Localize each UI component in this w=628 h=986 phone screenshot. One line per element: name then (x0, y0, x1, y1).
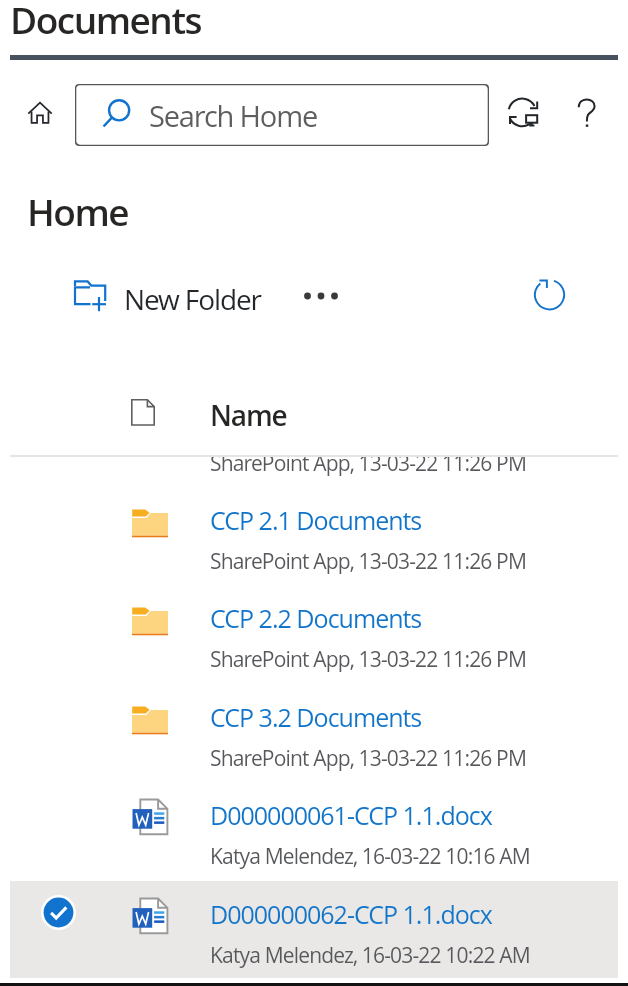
button[interactable]: D000000062-CCP 1.1.docx (10, 881, 618, 978)
staticText: SharePoint App, 13-03-22 11:26 PM (210, 744, 527, 773)
staticText: SharePoint App, 13-03-22 11:26 PM (210, 547, 527, 576)
staticText: CCP 2.1 Documents (210, 503, 422, 537)
staticText: Katya Melendez, 16-03-22 10:22 AM (210, 941, 530, 970)
button[interactable]: Help (566, 88, 612, 134)
staticText: CCP 3.2 Documents (210, 700, 422, 734)
staticText: Documents (10, 0, 201, 44)
button[interactable]: CCP 2.2 Documents (0, 585, 628, 682)
button[interactable]: CCP 2.1 Documents (0, 487, 628, 584)
staticText: Search Home (149, 96, 318, 135)
button[interactable]: More options (295, 272, 347, 320)
staticText: D000000062-CCP 1.1.docx (210, 897, 492, 931)
button[interactable]: New Folder (66, 268, 272, 318)
button[interactable]: D000000061-CCP 1.1.docx (0, 782, 628, 879)
staticText: Katya Melendez, 16-03-22 10:16 AM (210, 842, 530, 871)
button[interactable]: Sync (498, 88, 550, 140)
button[interactable]: Home (14, 87, 66, 139)
staticText: SharePoint App, 13-03-22 11:26 PM (210, 645, 527, 674)
staticText: CCP 2.2 Documents (210, 601, 422, 635)
button[interactable]: CCP 3.2 Documents (0, 684, 628, 781)
button[interactable]: Refresh (523, 268, 575, 320)
staticText: New Folder (124, 280, 261, 318)
staticText: Name (210, 396, 287, 434)
staticText: Home (27, 186, 129, 236)
button[interactable]: Search Home (75, 84, 489, 146)
staticText: SharePoint App, 13-03-22 11:26 PM (210, 449, 527, 478)
staticText: D000000061-CCP 1.1.docx (210, 798, 492, 832)
